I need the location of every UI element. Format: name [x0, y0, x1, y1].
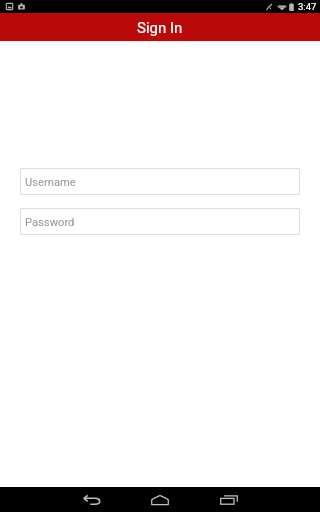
button[interactable]: Back — [72, 487, 112, 512]
button[interactable]: Recent apps — [209, 487, 249, 512]
button[interactable]: Username — [20, 168, 300, 195]
staticText: Password — [25, 216, 75, 229]
button[interactable]: Home — [140, 487, 180, 512]
staticText: 3:47 — [298, 1, 317, 12]
button[interactable]: Password — [20, 208, 300, 235]
staticText: Username — [25, 176, 76, 189]
button[interactable]: Sign In — [0, 13, 320, 41]
staticText: Sign In — [137, 19, 183, 37]
